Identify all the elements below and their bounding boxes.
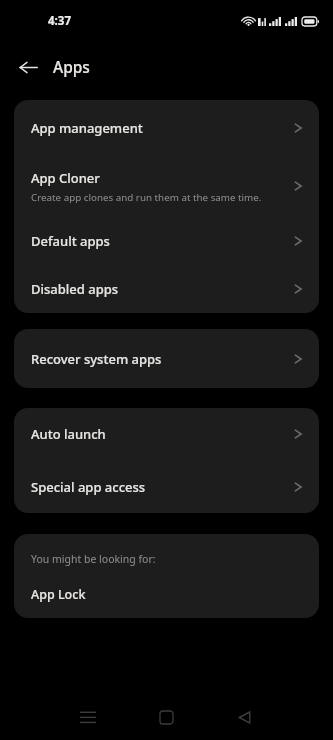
button[interactable]: Recover system apps <box>14 329 319 388</box>
staticText: Auto launch <box>31 425 106 443</box>
staticText: Default apps <box>31 232 110 250</box>
button[interactable]: Back <box>12 51 44 83</box>
button[interactable]: Disabled apps <box>14 265 319 313</box>
button[interactable]: App Lock <box>14 581 319 607</box>
staticText: App management <box>31 119 143 137</box>
staticText: App Cloner <box>31 169 100 187</box>
button[interactable]: Special app access <box>14 460 319 513</box>
staticText: Special app access <box>31 478 146 496</box>
button[interactable]: App management <box>14 100 319 155</box>
button[interactable]: App Cloner <box>14 155 319 217</box>
button[interactable]: Auto launch <box>14 408 319 460</box>
staticText: Disabled apps <box>31 280 119 298</box>
staticText: Apps <box>53 56 90 77</box>
staticText: App Lock <box>31 586 86 603</box>
staticText: You might be looking for: <box>31 552 156 566</box>
button[interactable]: Default apps <box>14 217 319 265</box>
button[interactable]: Back <box>222 695 266 739</box>
staticText: Recover system apps <box>31 350 162 368</box>
staticText: Create app clones and run them at the sa… <box>31 191 262 204</box>
button[interactable]: Home <box>144 695 188 739</box>
staticText: 4:37 <box>48 13 71 29</box>
button[interactable]: Recent apps <box>66 695 110 739</box>
